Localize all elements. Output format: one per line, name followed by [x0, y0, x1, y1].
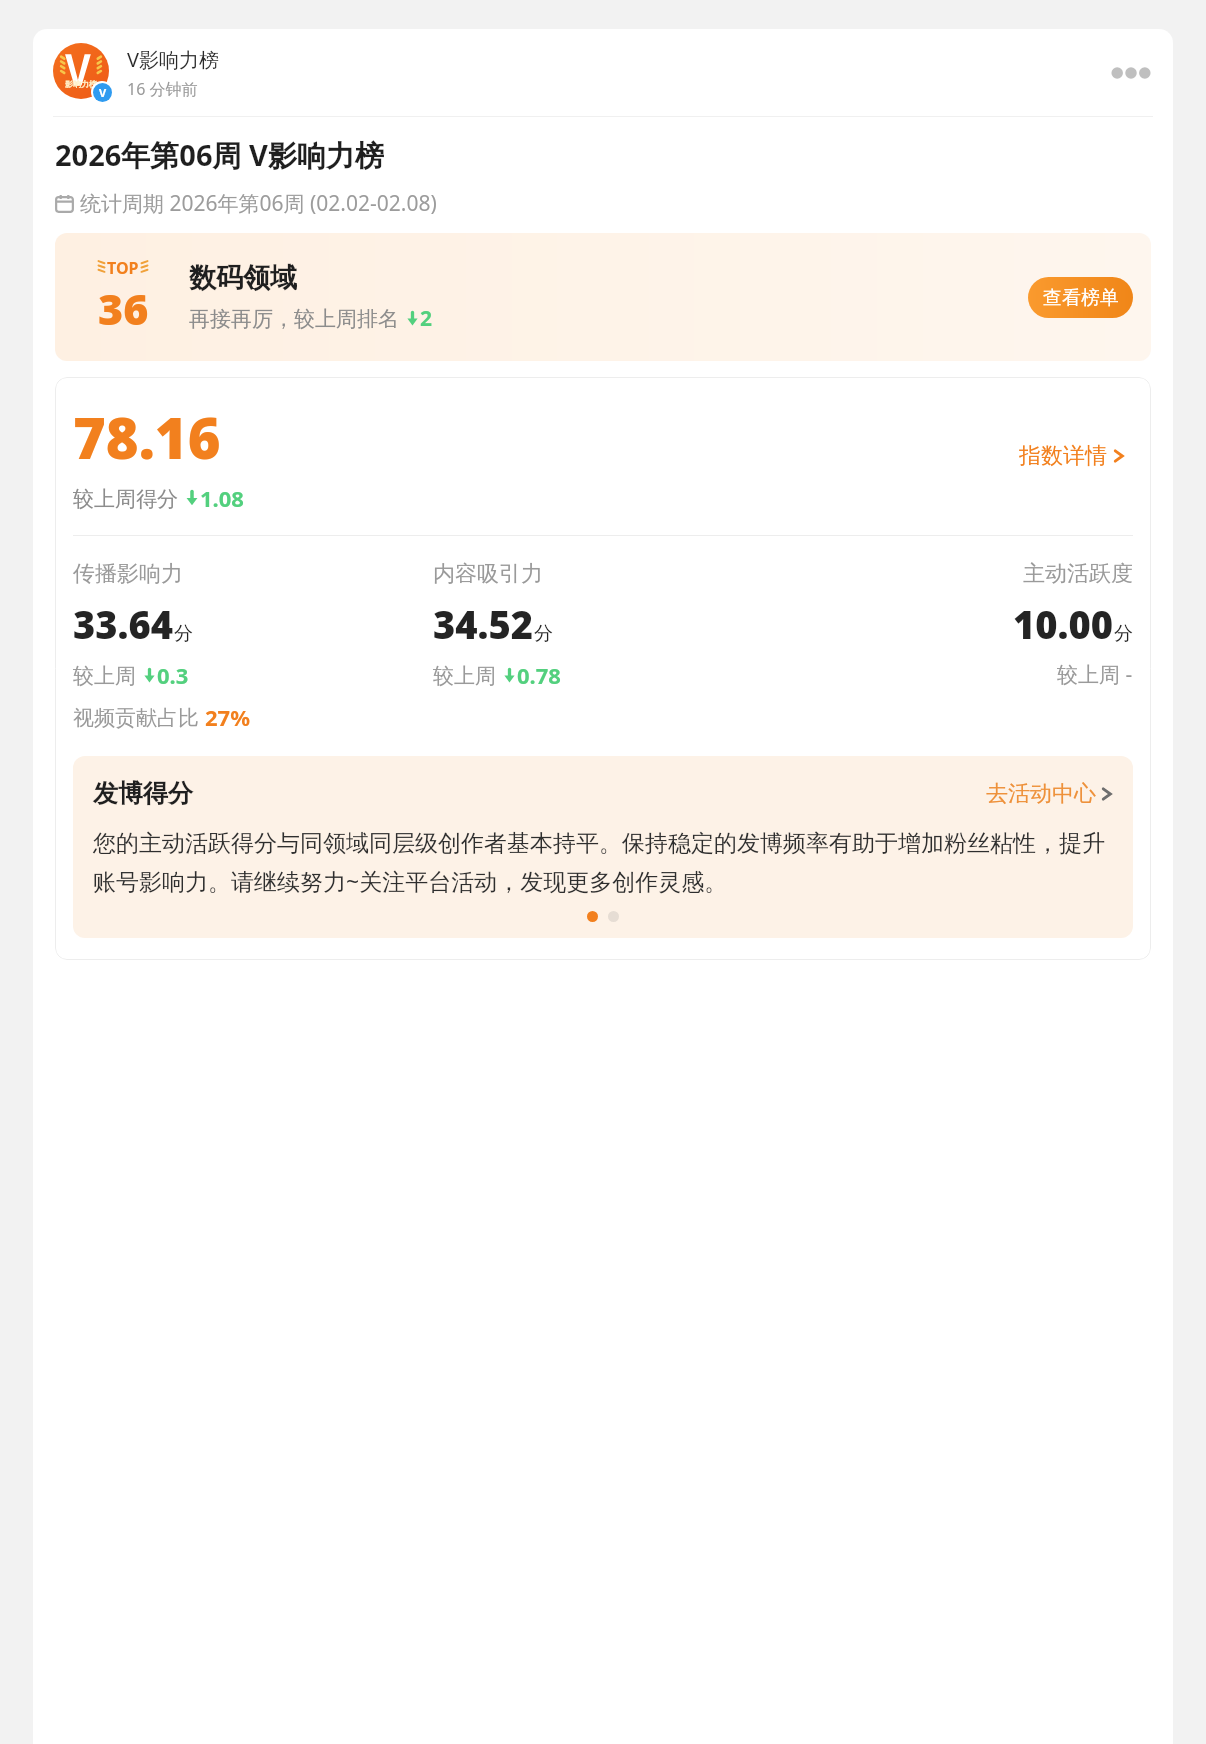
button[interactable]: 发博得分	[73, 756, 1133, 938]
staticText: TOP	[107, 257, 139, 279]
button[interactable]: More options	[1109, 51, 1153, 95]
staticText: V影响力榜	[127, 46, 219, 73]
staticText: 2	[420, 304, 433, 333]
staticText: 再接再厉，较上周排名	[189, 304, 405, 333]
staticText: 0.3	[157, 660, 189, 690]
staticText: 统计周期 2026年第06周 (02.02-02.08)	[80, 189, 437, 218]
button[interactable]: 指数详情	[1011, 434, 1133, 478]
staticText: 视频贡献占比	[73, 703, 205, 732]
staticText: 2026年第06周 V影响力榜	[55, 135, 384, 175]
staticText: 指数详情	[1019, 442, 1107, 470]
staticText: 16 分钟前	[127, 78, 198, 100]
staticText: 分	[534, 622, 553, 646]
button[interactable]: 去活动中心	[986, 780, 1113, 808]
staticText: 数码领域	[189, 261, 297, 295]
staticText: 1.08	[200, 483, 244, 513]
staticText: 78.16	[73, 399, 221, 475]
staticText: 查看榜单	[1043, 286, 1119, 310]
staticText: 0.78	[517, 660, 561, 690]
staticText: 较上周	[73, 661, 142, 690]
staticText: 传播影响力	[73, 560, 183, 588]
staticText: V	[99, 85, 107, 100]
staticText: 33.64	[73, 598, 174, 650]
staticText: 分	[174, 622, 193, 646]
button[interactable]: TOP	[55, 233, 1151, 361]
staticText: 影响力榜	[65, 79, 97, 89]
staticText: 您的主动活跃得分与同领域同层级创作者基本持平。保持稳定的发博频率有助于增加粉丝粘…	[93, 829, 1113, 897]
staticText: 去活动中心	[986, 780, 1096, 808]
staticText: 内容吸引力	[433, 560, 543, 588]
button[interactable]: 影响力榜	[33, 29, 1173, 116]
staticText: 36	[98, 279, 149, 338]
button[interactable]: 查看榜单	[1028, 277, 1133, 318]
staticText: 发博得分	[93, 778, 193, 809]
staticText: 10.00	[1013, 598, 1114, 650]
staticText: 27%	[205, 702, 251, 732]
staticText: 较上周	[433, 661, 502, 690]
staticText: 较上周 -	[1057, 660, 1133, 689]
staticText: 34.52	[433, 598, 534, 650]
staticText: 分	[1114, 622, 1133, 646]
staticText: 较上周得分	[73, 484, 184, 513]
staticText: 主动活跃度	[1023, 560, 1133, 588]
